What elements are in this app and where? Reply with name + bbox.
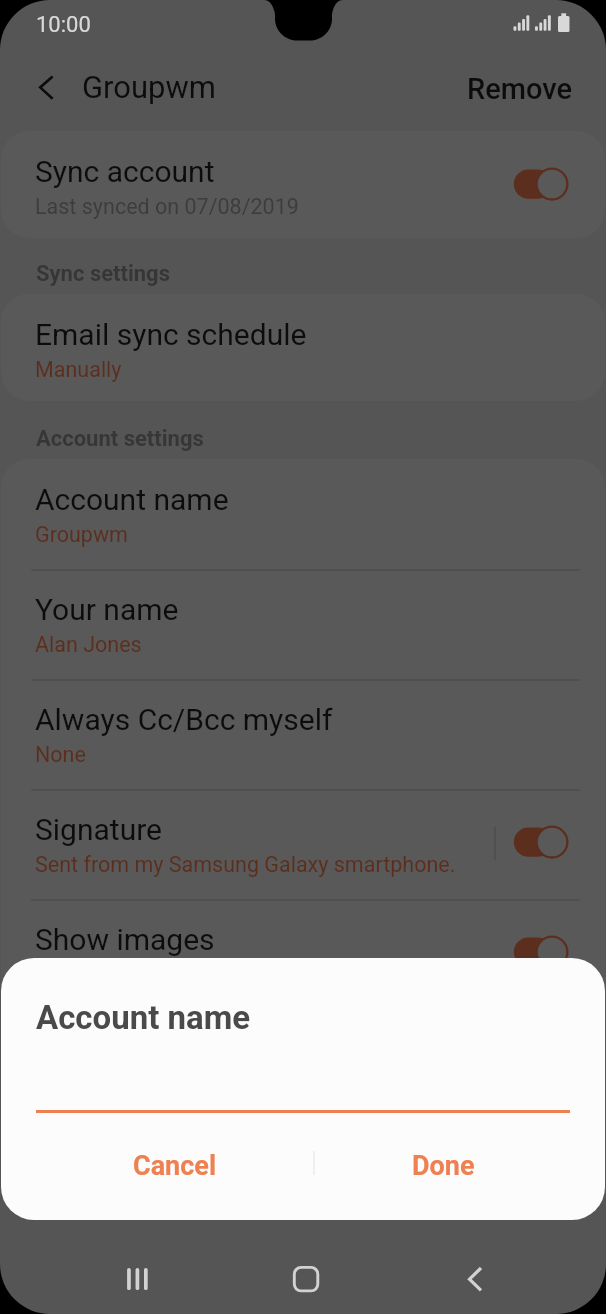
button[interactable]: Show images <box>1 899 605 1009</box>
button[interactable]: Account name <box>1 459 605 569</box>
staticText: Email sync schedule <box>35 317 307 352</box>
button[interactable]: Home <box>283 1256 329 1302</box>
staticText: Show images <box>35 922 215 957</box>
staticText: 10:00 <box>36 12 91 38</box>
button[interactable]: Toggle Show images <box>501 923 585 985</box>
staticText: None <box>35 742 86 767</box>
button[interactable]: Done <box>329 1133 557 1199</box>
button[interactable]: Toggle Signature <box>501 813 585 875</box>
button[interactable]: Back <box>452 1256 498 1302</box>
staticText: Groupwm <box>82 69 216 105</box>
staticText: Remove <box>467 72 573 106</box>
staticText: Done <box>412 1150 475 1182</box>
staticText: Account name <box>35 482 229 517</box>
staticText: Cancel <box>133 1150 217 1182</box>
staticText: Your name <box>35 592 179 627</box>
button[interactable]: Your name <box>1 569 605 679</box>
staticText: Alan Jones <box>35 632 142 657</box>
button[interactable]: Sync account <box>1 131 605 238</box>
staticText: Last synced on 07/08/2019 <box>35 194 299 219</box>
button[interactable]: Recent apps <box>113 1256 159 1302</box>
button[interactable]: Toggle Sync account <box>501 155 585 217</box>
button[interactable]: Navigate up <box>23 63 71 111</box>
button[interactable]: Signature <box>1 789 605 899</box>
staticText: Signature <box>35 812 162 847</box>
button[interactable]: Cancel <box>61 1133 289 1199</box>
staticText: Account name <box>36 998 251 1037</box>
staticText: Sync settings <box>36 261 170 287</box>
staticText: Account settings <box>36 426 204 452</box>
staticText: Always Cc/Bcc myself <box>35 702 333 737</box>
button[interactable]: Remove <box>455 62 585 116</box>
staticText: Groupwm <box>35 522 128 547</box>
button[interactable]: Always Cc/Bcc myself <box>1 679 605 789</box>
staticText: Manually <box>35 357 122 382</box>
staticText: Sent from my Samsung Galaxy smartphone. <box>35 852 456 877</box>
staticText: Sync account <box>35 154 215 189</box>
button[interactable]: Email sync schedule <box>1 294 605 401</box>
